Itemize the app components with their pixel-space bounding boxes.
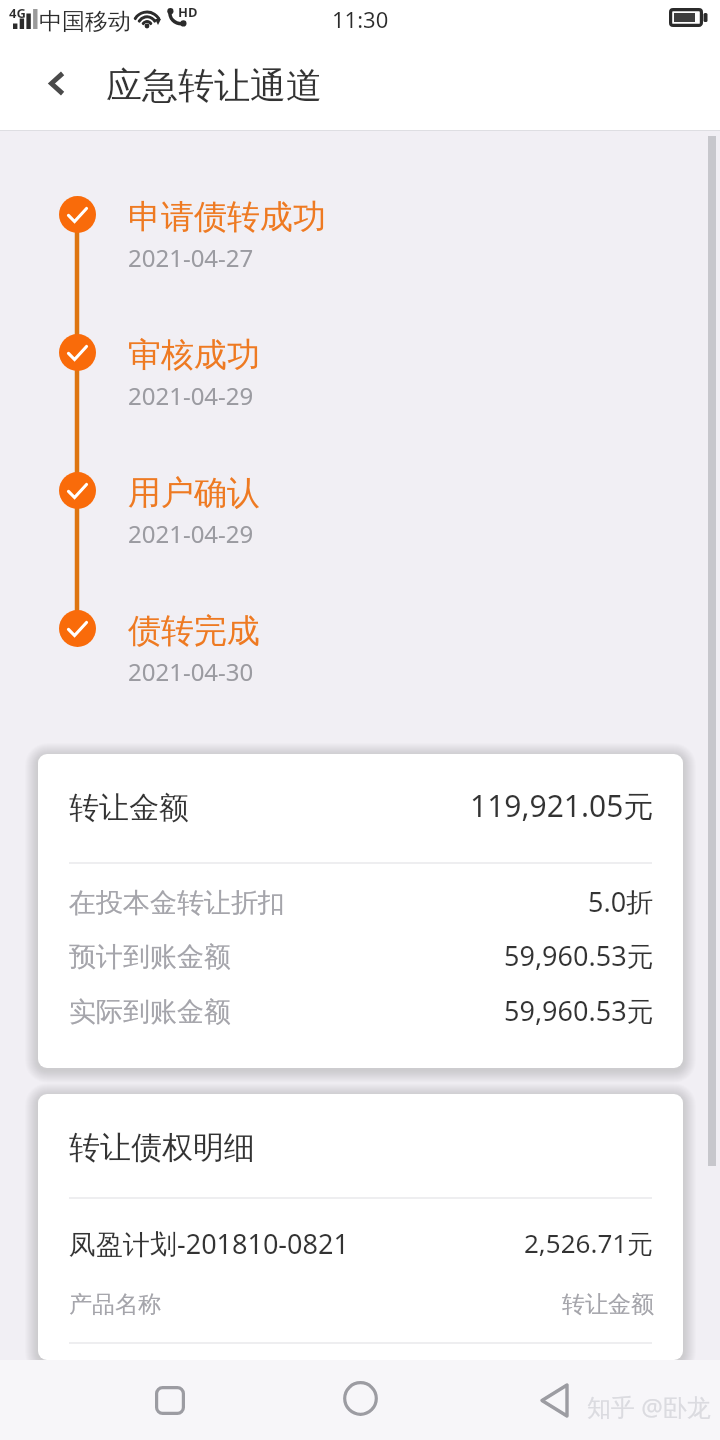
staticText: 转让金额 xyxy=(562,1290,654,1319)
staticText: 2021-04-29 xyxy=(128,517,254,550)
staticText: 2,526.71元 xyxy=(524,1225,654,1261)
staticText: 产品名称 xyxy=(69,1290,161,1319)
staticText: 11:30 xyxy=(332,4,389,34)
staticText: HD xyxy=(178,3,198,21)
button[interactable]: Back xyxy=(29,55,85,111)
button[interactable]: Recents xyxy=(140,1360,200,1440)
staticText: 59,960.53元 xyxy=(504,992,654,1029)
button[interactable]: Home xyxy=(330,1360,390,1440)
staticText: 预计到账金额 xyxy=(69,940,231,974)
staticText: 凤盈计划-201810-0821 xyxy=(69,1225,349,1262)
staticText: 用户确认 xyxy=(128,472,260,514)
staticText: 实际到账金额 xyxy=(69,995,231,1029)
staticText: 4G xyxy=(9,4,26,22)
staticText: 债转完成 xyxy=(128,610,260,652)
staticText: 在投本金转让折扣 xyxy=(69,886,285,920)
staticText: 2021-04-27 xyxy=(128,241,254,274)
staticText: 知乎 @卧龙 xyxy=(587,1390,711,1423)
staticText: 59,960.53元 xyxy=(504,937,654,974)
staticText: 中国移动 xyxy=(39,7,131,36)
staticText: 2021-04-29 xyxy=(128,379,254,412)
staticText: 2021-04-30 xyxy=(128,655,254,688)
staticText: 应急转让通道 xyxy=(106,63,322,108)
staticText: 119,921.05元 xyxy=(470,785,654,826)
staticText: 转让债权明细 xyxy=(69,1128,255,1167)
staticText: 审核成功 xyxy=(128,334,260,376)
button[interactable]: Back xyxy=(524,1360,584,1440)
staticText: 申请债转成功 xyxy=(128,196,326,238)
staticText: 转让金额 xyxy=(69,789,189,827)
staticText: 5.0折 xyxy=(588,883,654,920)
